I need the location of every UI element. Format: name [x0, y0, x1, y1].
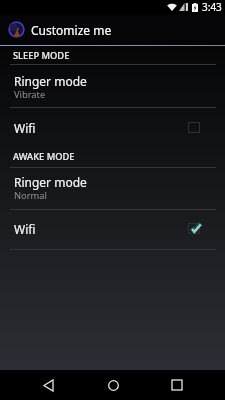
button[interactable]: Ringer mode	[0, 71, 225, 108]
staticText: Vibrate	[14, 88, 46, 101]
staticText: Normal	[14, 189, 47, 202]
button[interactable]: Wifi	[0, 221, 225, 237]
button[interactable]: Ringer mode	[0, 172, 225, 209]
button[interactable]: Wifi	[0, 120, 225, 136]
staticText: Ringer mode	[14, 73, 87, 89]
staticText: 3:43	[202, 0, 222, 14]
staticText: Wifi	[14, 221, 36, 237]
staticText: Ringer mode	[14, 174, 87, 190]
button[interactable]: Back	[32, 370, 64, 400]
staticText: SLEEP MODE	[13, 49, 70, 62]
staticText: AWAKE MODE	[13, 150, 75, 163]
staticText: Customize me	[31, 22, 112, 38]
button[interactable]: Recents	[161, 370, 193, 400]
staticText: Wifi	[14, 120, 36, 136]
button[interactable]: Home	[97, 370, 129, 400]
